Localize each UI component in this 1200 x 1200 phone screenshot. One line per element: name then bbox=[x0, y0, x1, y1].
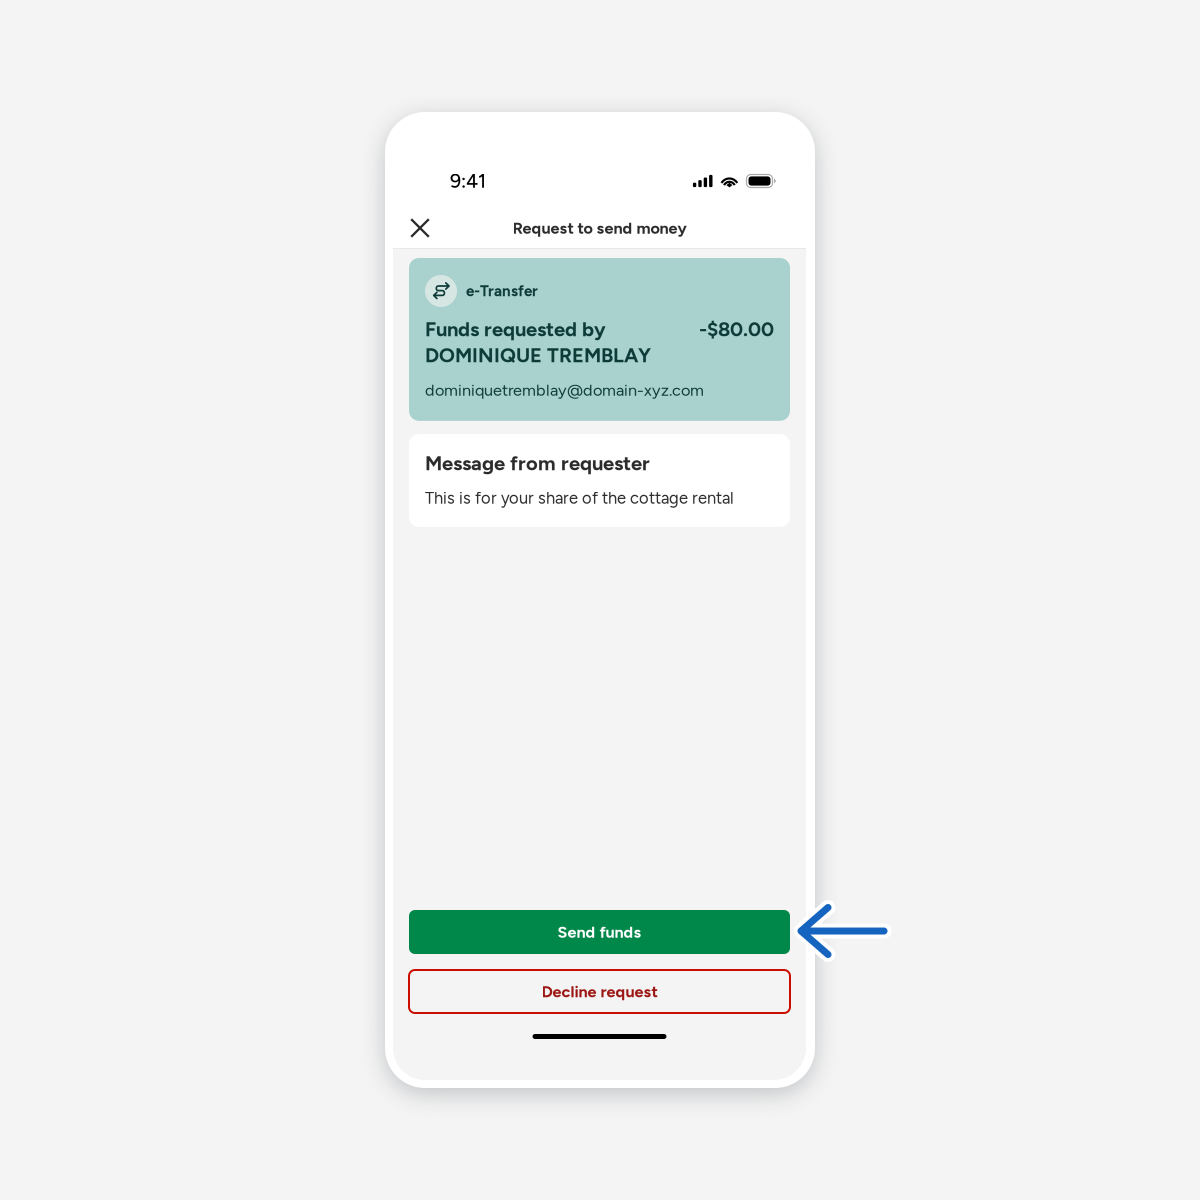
staticText: dominiquetremblay@domain-xyz.com bbox=[425, 380, 704, 400]
staticText: Message from requester bbox=[425, 451, 650, 475]
staticText: e-Transfer bbox=[466, 282, 538, 300]
button[interactable]: Send funds bbox=[409, 910, 790, 954]
button[interactable]: Decline request bbox=[409, 970, 790, 1013]
staticText: -$80.00 bbox=[699, 317, 774, 341]
staticText: This is for your share of the cottage re… bbox=[425, 488, 734, 508]
staticText: Request to send money bbox=[512, 218, 686, 238]
staticText: Funds requested by DOMINIQUE TREMBLAY bbox=[425, 317, 651, 367]
button[interactable]: Close bbox=[398, 206, 442, 250]
staticText: 9:41 bbox=[450, 169, 486, 193]
staticText: Decline request bbox=[541, 982, 657, 1001]
staticText: Send funds bbox=[557, 922, 641, 942]
